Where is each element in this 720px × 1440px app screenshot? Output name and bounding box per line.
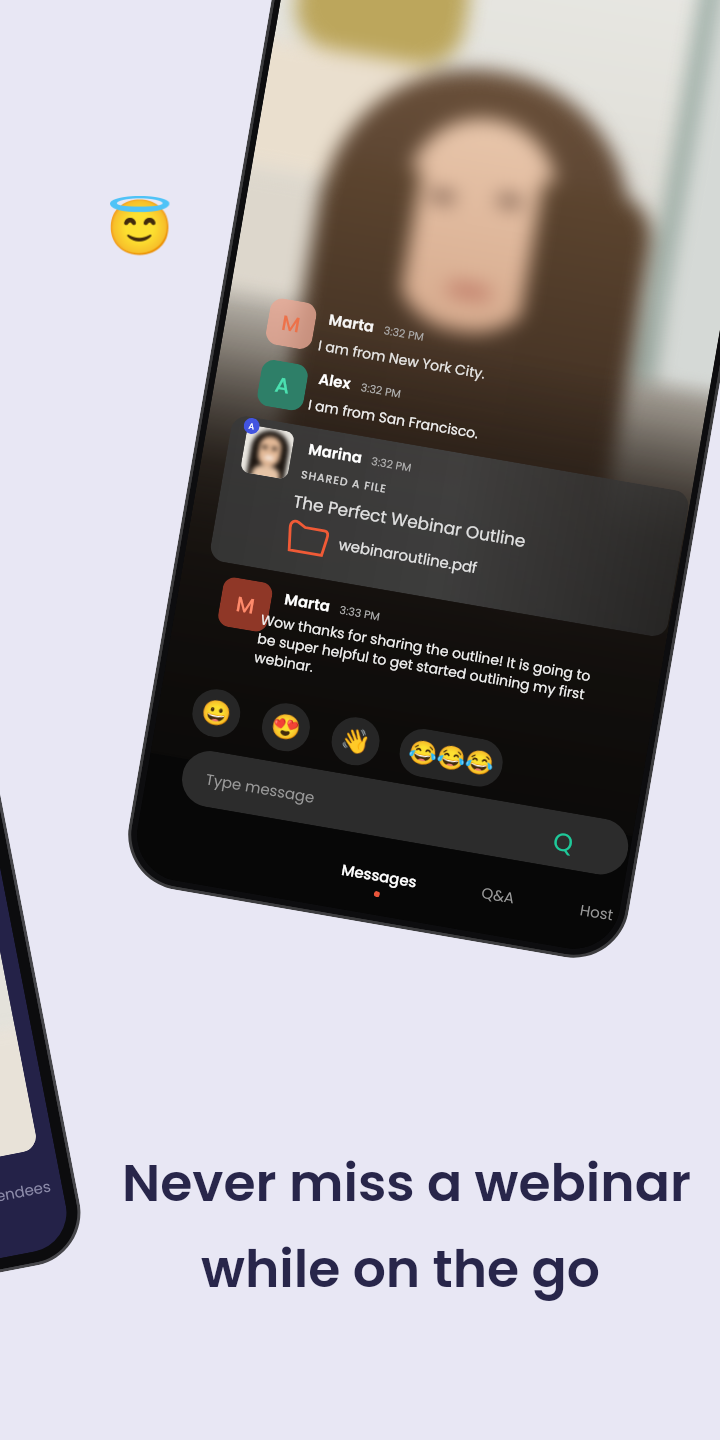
button[interactable]: Type message	[178, 747, 633, 879]
staticText: Never miss a webinar	[122, 1146, 691, 1219]
staticText: 😀	[199, 697, 233, 729]
staticText: M	[234, 589, 257, 621]
staticText: The Perfect Webinar Outline	[291, 489, 528, 553]
button[interactable]: Send message	[545, 823, 582, 860]
staticText: while on the go	[201, 1232, 600, 1305]
button[interactable]: 😀	[189, 685, 244, 741]
staticText: 😂😂😂	[406, 738, 497, 779]
button[interactable]: Messages	[338, 859, 419, 903]
staticText: SHARED A FILE	[300, 466, 388, 496]
staticText: Type message	[204, 768, 316, 808]
staticText: I am from New York City.	[317, 335, 487, 384]
button[interactable]: Host	[578, 899, 615, 926]
staticText: Marta	[327, 309, 376, 337]
staticText: Alex	[317, 368, 353, 394]
button[interactable]: Q&A	[480, 882, 517, 909]
button[interactable]: 👋	[328, 713, 383, 769]
staticText: Wow thanks for sharing the outline! It i…	[253, 609, 613, 727]
staticText: webinaroutline.pdf	[337, 534, 480, 578]
staticText: Q	[551, 824, 576, 859]
staticText: A	[248, 421, 255, 432]
staticText: 3:33 PM	[338, 602, 381, 624]
staticText: 3:32 PM	[360, 379, 403, 401]
staticText: 3:32 PM	[370, 453, 413, 475]
staticText: Marina	[307, 438, 364, 468]
staticText: Messages	[340, 859, 419, 893]
staticText: Marta	[283, 588, 332, 617]
staticText: 👋	[338, 725, 373, 758]
staticText: 😍	[269, 711, 303, 744]
button[interactable]: 😍	[258, 699, 314, 755]
staticText: I am from San Francisco.	[306, 394, 480, 444]
staticText: Attendees	[0, 1175, 53, 1211]
button[interactable]: 😂😂😂	[396, 725, 506, 790]
staticText: 😇	[106, 196, 174, 259]
staticText: M	[279, 308, 303, 340]
button[interactable]	[208, 414, 691, 638]
staticText: 3:32 PM	[383, 322, 426, 344]
staticText: A	[273, 370, 292, 401]
